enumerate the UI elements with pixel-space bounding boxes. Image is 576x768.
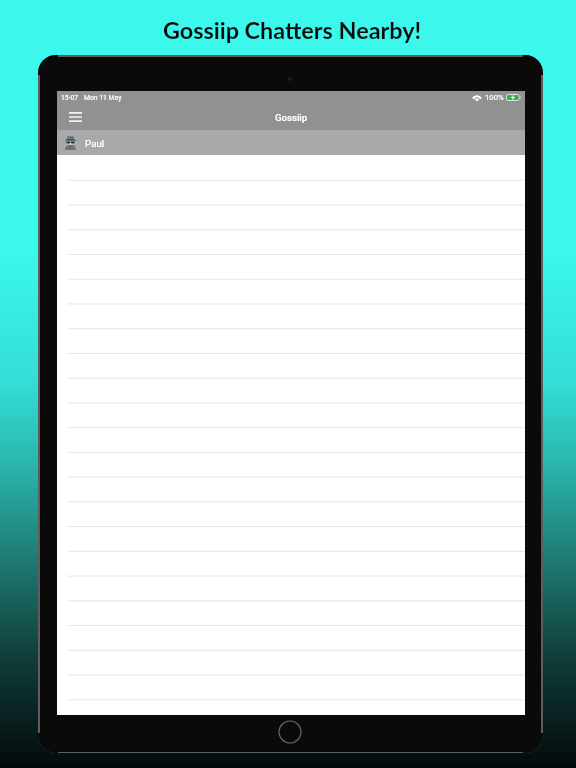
button[interactable] (57, 605, 525, 630)
button[interactable] (57, 655, 525, 680)
button[interactable] (57, 230, 525, 255)
button[interactable] (57, 305, 525, 330)
button[interactable] (57, 280, 525, 305)
button[interactable] (57, 580, 525, 605)
button[interactable] (57, 430, 525, 455)
button[interactable]: Open navigation menu (65, 107, 85, 127)
button[interactable] (57, 555, 525, 580)
button[interactable] (57, 330, 525, 355)
button[interactable] (57, 630, 525, 655)
staticText: 15-07 (61, 94, 79, 102)
button[interactable] (57, 255, 525, 280)
button[interactable] (57, 380, 525, 405)
staticText: Gossiip (275, 112, 308, 123)
staticText: Gossiip Chatters Nearby! (4, 16, 576, 44)
staticText: Paul (85, 138, 105, 149)
button[interactable] (57, 505, 525, 530)
button[interactable] (57, 455, 525, 480)
button[interactable]: Paul (57, 130, 525, 155)
button[interactable] (57, 205, 525, 230)
button[interactable] (57, 680, 525, 705)
staticText: Mon 11 May (84, 94, 122, 102)
button[interactable] (57, 180, 525, 205)
button[interactable] (57, 530, 525, 555)
button[interactable] (57, 480, 525, 505)
button[interactable] (57, 355, 525, 380)
button[interactable] (57, 405, 525, 430)
staticText: 100% (485, 93, 504, 102)
